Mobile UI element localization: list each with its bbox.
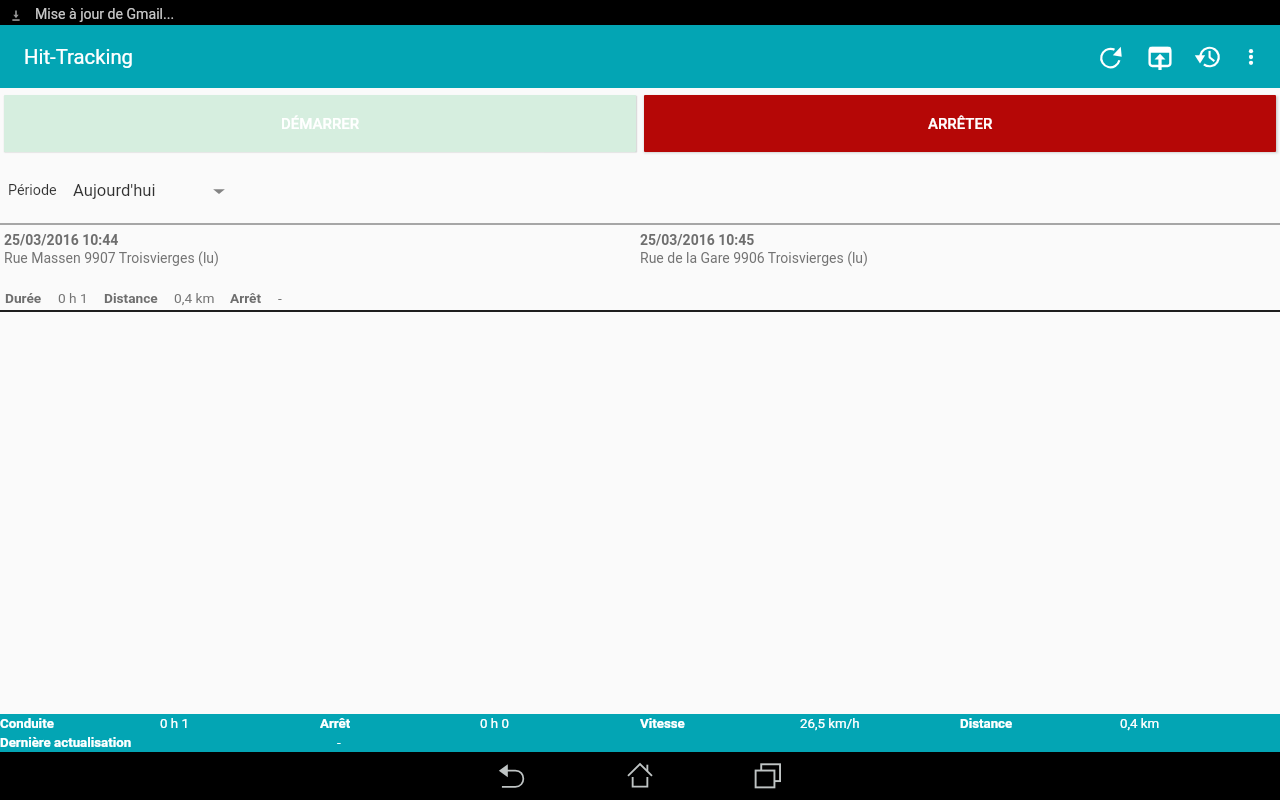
staticText: Mise à jour de Gmail... (35, 6, 175, 23)
staticText: Conduite (0, 716, 54, 732)
staticText: 0 h 1 (160, 716, 189, 732)
button[interactable]: ARRÊTER (644, 95, 1276, 152)
staticText: Rue de la Gare 9906 Troisvierges (lu) (640, 250, 868, 266)
staticText: 0 h 0 (480, 716, 509, 732)
button[interactable]: 25/03/2016 10:44 (0, 225, 1280, 310)
button[interactable]: Home (576, 752, 704, 800)
staticText: 25/03/2016 10:45 (640, 232, 755, 248)
staticText: Dernière actualisation (0, 735, 132, 751)
staticText: Rue Massen 9907 Troisvierges (lu) (4, 250, 219, 266)
button[interactable]: Aujourd'hui (73, 181, 226, 200)
staticText: 0 h 1 (58, 290, 88, 306)
staticText: - (337, 735, 341, 751)
staticText: Arrêt (230, 290, 262, 306)
staticText: Hit-Tracking (24, 45, 134, 69)
staticText: Arrêt (320, 716, 351, 732)
staticText: Durée (5, 290, 42, 306)
button[interactable]: More options (1232, 33, 1269, 81)
staticText: Distance (104, 290, 158, 306)
staticText: 0,4 km (1120, 716, 1160, 732)
staticText: ARRÊTER (928, 115, 993, 133)
staticText: Vitesse (640, 716, 685, 732)
staticText: Distance (960, 716, 1013, 732)
button[interactable]: Recent apps (704, 752, 832, 800)
button[interactable]: Export (1136, 33, 1184, 81)
staticText: 25/03/2016 10:44 (4, 232, 119, 248)
staticText: 0,4 km (174, 290, 215, 306)
button[interactable]: Back (448, 752, 576, 800)
staticText: - (278, 290, 282, 306)
staticText: 26,5 km/h (800, 716, 860, 732)
button[interactable]: History (1184, 33, 1232, 81)
staticText: Période (8, 182, 57, 199)
staticText: Aujourd'hui (73, 181, 156, 200)
button[interactable]: Refresh (1088, 33, 1136, 81)
button[interactable]: DÉMARRER (4, 95, 636, 152)
staticText: DÉMARRER (281, 115, 360, 133)
